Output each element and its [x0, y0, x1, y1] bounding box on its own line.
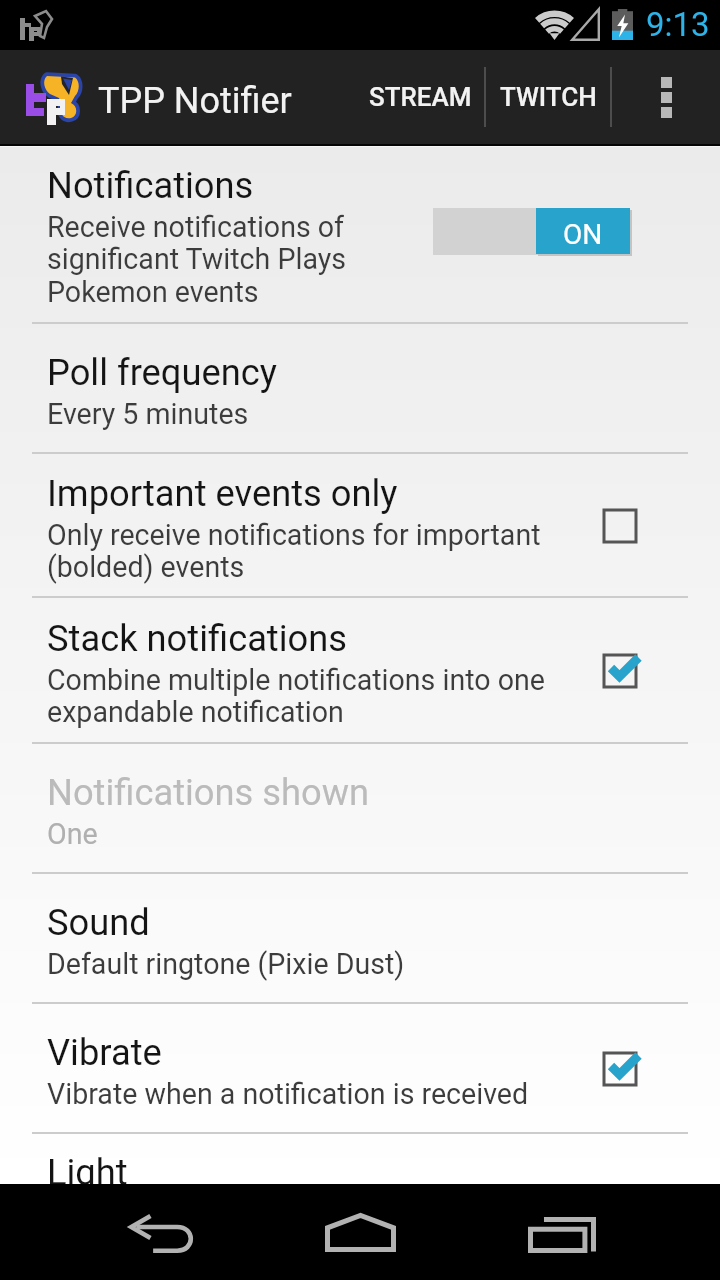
button[interactable]: Checked: [588, 639, 652, 703]
staticText: 9:13: [646, 5, 710, 44]
staticText: Vibrate: [47, 1031, 162, 1074]
staticText: TWITCH: [500, 82, 597, 112]
staticText: Sound: [47, 901, 150, 944]
staticText: Vibrate when a notification is received: [47, 1077, 529, 1111]
button[interactable]: Light: [0, 1135, 720, 1262]
staticText: Every 5 minutes: [47, 397, 249, 431]
staticText: Stack notifications: [47, 617, 348, 660]
button[interactable]: Home: [310, 1184, 410, 1280]
button[interactable]: Notifications shown: [0, 745, 720, 872]
staticText: ON: [563, 218, 603, 251]
button[interactable]: Notifications: [0, 147, 720, 322]
button[interactable]: Recent apps: [512, 1187, 612, 1280]
button[interactable]: Poll frequency: [0, 325, 720, 452]
button[interactable]: Stack notifications: [0, 599, 720, 742]
button[interactable]: Unchecked: [588, 494, 652, 558]
button[interactable]: STREAM: [356, 50, 484, 144]
staticText: TPP Notifier: [98, 80, 292, 122]
staticText: Poll frequency: [47, 351, 277, 394]
staticText: Light: [47, 1151, 128, 1194]
staticText: Notifications shown: [47, 771, 370, 814]
button[interactable]: Back: [112, 1187, 212, 1280]
staticText: STREAM: [369, 82, 472, 112]
button[interactable]: Important events only: [0, 455, 720, 596]
staticText: One: [47, 817, 98, 851]
button[interactable]: Checked: [588, 1037, 652, 1101]
staticText: Only receive notifications for important…: [47, 518, 577, 584]
staticText: Default ringtone (Pixie Dust): [47, 947, 405, 981]
staticText: Receive notifications of significant Twi…: [47, 210, 407, 309]
button[interactable]: Vibrate: [0, 1005, 720, 1132]
staticText: Flash the LED when a notification arrive…: [47, 1197, 562, 1231]
button[interactable]: Notifications on: [433, 208, 630, 256]
staticText: Important events only: [47, 472, 398, 515]
staticText: Notifications: [47, 164, 254, 207]
staticText: Combine multiple notifications into one …: [47, 663, 577, 729]
button[interactable]: More options: [612, 50, 720, 144]
button[interactable]: TWITCH: [486, 50, 610, 144]
button[interactable]: Sound: [0, 875, 720, 1002]
